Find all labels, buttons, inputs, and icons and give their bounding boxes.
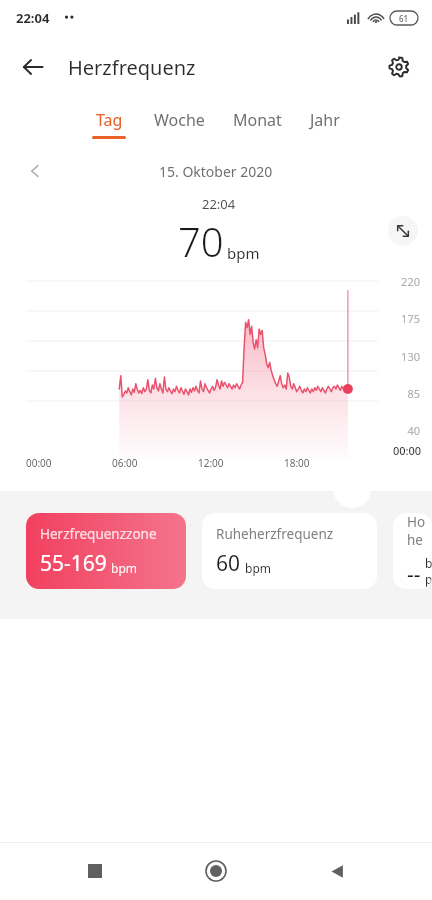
button[interactable]: Herzfrequenzzone: [26, 513, 186, 589]
button[interactable]: Home: [190, 845, 242, 897]
staticText: Jahr: [310, 109, 340, 131]
staticText: 12:00: [198, 456, 224, 470]
button[interactable]: Ruheherzfrequenz: [202, 513, 377, 589]
staticText: 70: [178, 214, 224, 268]
staticText: bpm: [245, 560, 271, 576]
button[interactable]: Jahr: [310, 109, 340, 139]
staticText: Tag: [96, 109, 123, 131]
staticText: 06:00: [112, 456, 138, 470]
staticText: Ruheherzfrequenz: [216, 525, 334, 543]
staticText: 22:04: [16, 9, 50, 27]
staticText: bpm: [111, 560, 137, 576]
staticText: 22:04: [202, 195, 236, 213]
staticText: 00:00: [393, 443, 422, 458]
staticText: --: [407, 560, 421, 589]
staticText: 175: [401, 311, 420, 326]
staticText: 60: [216, 549, 241, 578]
button[interactable]: Woche: [154, 109, 205, 139]
staticText: Monat: [233, 109, 282, 131]
button[interactable]: Tag: [92, 109, 126, 139]
staticText: 18:00: [284, 456, 310, 470]
button[interactable]: Back: [311, 845, 363, 897]
staticText: 15. Oktober 2020: [159, 162, 273, 181]
staticText: 85: [407, 386, 420, 401]
button[interactable]: Monat: [233, 109, 282, 139]
staticText: 61: [399, 13, 409, 24]
staticText: 00:00: [26, 456, 52, 470]
button[interactable]: Recent apps: [69, 845, 121, 897]
staticText: Herzfrequenz: [68, 54, 196, 81]
button[interactable]: Hohe: [393, 513, 432, 589]
staticText: Herzfrequenzzone: [40, 525, 157, 543]
staticText: 55-169: [40, 549, 107, 578]
button[interactable]: Settings: [376, 44, 422, 90]
staticText: Hohe: [407, 513, 432, 549]
staticText: 130: [401, 349, 420, 364]
staticText: bpm: [227, 243, 260, 263]
staticText: 220: [401, 274, 420, 289]
button[interactable]: Back: [10, 44, 56, 90]
staticText: Woche: [154, 109, 205, 131]
staticText: 40: [407, 423, 420, 438]
button[interactable]: Previous day: [18, 154, 52, 188]
staticText: bpm: [425, 555, 432, 587]
button[interactable]: Expand chart: [388, 216, 418, 246]
